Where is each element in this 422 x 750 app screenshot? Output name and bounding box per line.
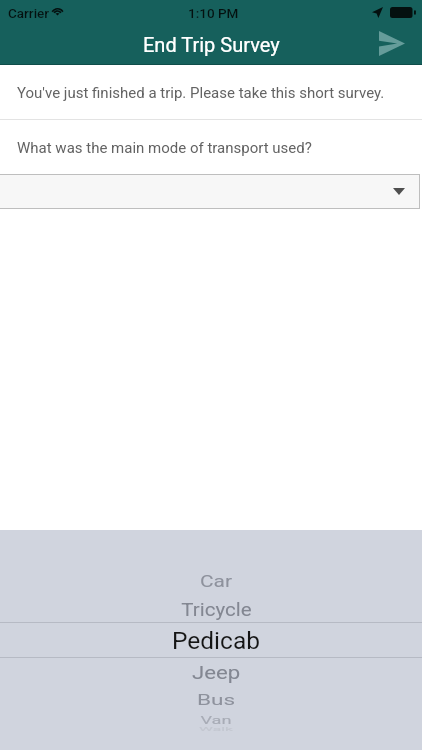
button[interactable]: Car	[5, 561, 422, 601]
staticText: 1:10 PM	[188, 5, 239, 21]
button[interactable]: Tricycle	[5, 589, 422, 629]
button[interactable]: What was the main mode of transport used…	[0, 120, 422, 174]
staticText: Bus	[197, 691, 235, 709]
staticText: Tricycle	[181, 598, 252, 621]
button[interactable]: Open mode of transport list	[0, 174, 420, 209]
button[interactable]: You've just finished a trip. Please take…	[0, 65, 422, 119]
button[interactable]: Bus	[5, 680, 422, 720]
button[interactable]: Car	[0, 530, 422, 750]
staticText: What was the main mode of transport used…	[17, 139, 312, 157]
staticText: Jeep	[192, 663, 240, 684]
staticText: Pedicab	[172, 628, 260, 655]
button[interactable]: Pedicab	[5, 621, 422, 661]
button[interactable]: Send survey	[376, 25, 416, 65]
staticText: Walk	[199, 726, 233, 732]
button[interactable]: Open mode of transport list	[376, 174, 420, 209]
staticText: Carrier	[8, 5, 50, 21]
button[interactable]: Jeep	[5, 653, 422, 693]
staticText: End Trip Survey	[143, 33, 280, 56]
staticText: Car	[200, 571, 232, 591]
staticText: You've just finished a trip. Please take…	[17, 84, 385, 102]
staticText: Van	[200, 714, 232, 727]
button[interactable]: Van	[5, 700, 422, 740]
